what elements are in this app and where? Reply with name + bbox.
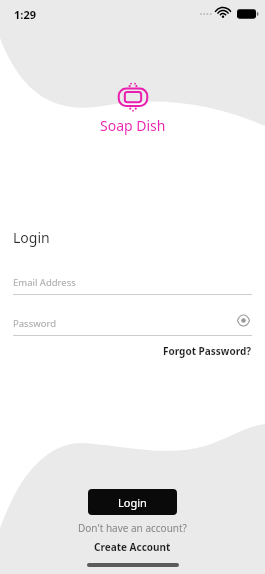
staticText: Login <box>118 495 147 510</box>
staticText: Login <box>13 228 50 247</box>
button[interactable]: Password <box>13 317 252 336</box>
button[interactable]: Show password <box>234 311 252 329</box>
button[interactable]: Email Address <box>13 276 252 295</box>
staticText: 1:29 <box>14 7 36 22</box>
button[interactable]: Forgot Password? <box>163 342 252 360</box>
staticText: Forgot Password? <box>163 344 252 358</box>
staticText: Password <box>13 317 56 330</box>
button[interactable]: Create Account <box>90 539 175 555</box>
staticText: Soap Dish <box>100 116 166 135</box>
staticText: Don't have an account? <box>78 521 187 535</box>
staticText: Email Address <box>13 276 76 289</box>
staticText: Create Account <box>94 540 171 554</box>
button[interactable]: Login <box>88 489 177 515</box>
